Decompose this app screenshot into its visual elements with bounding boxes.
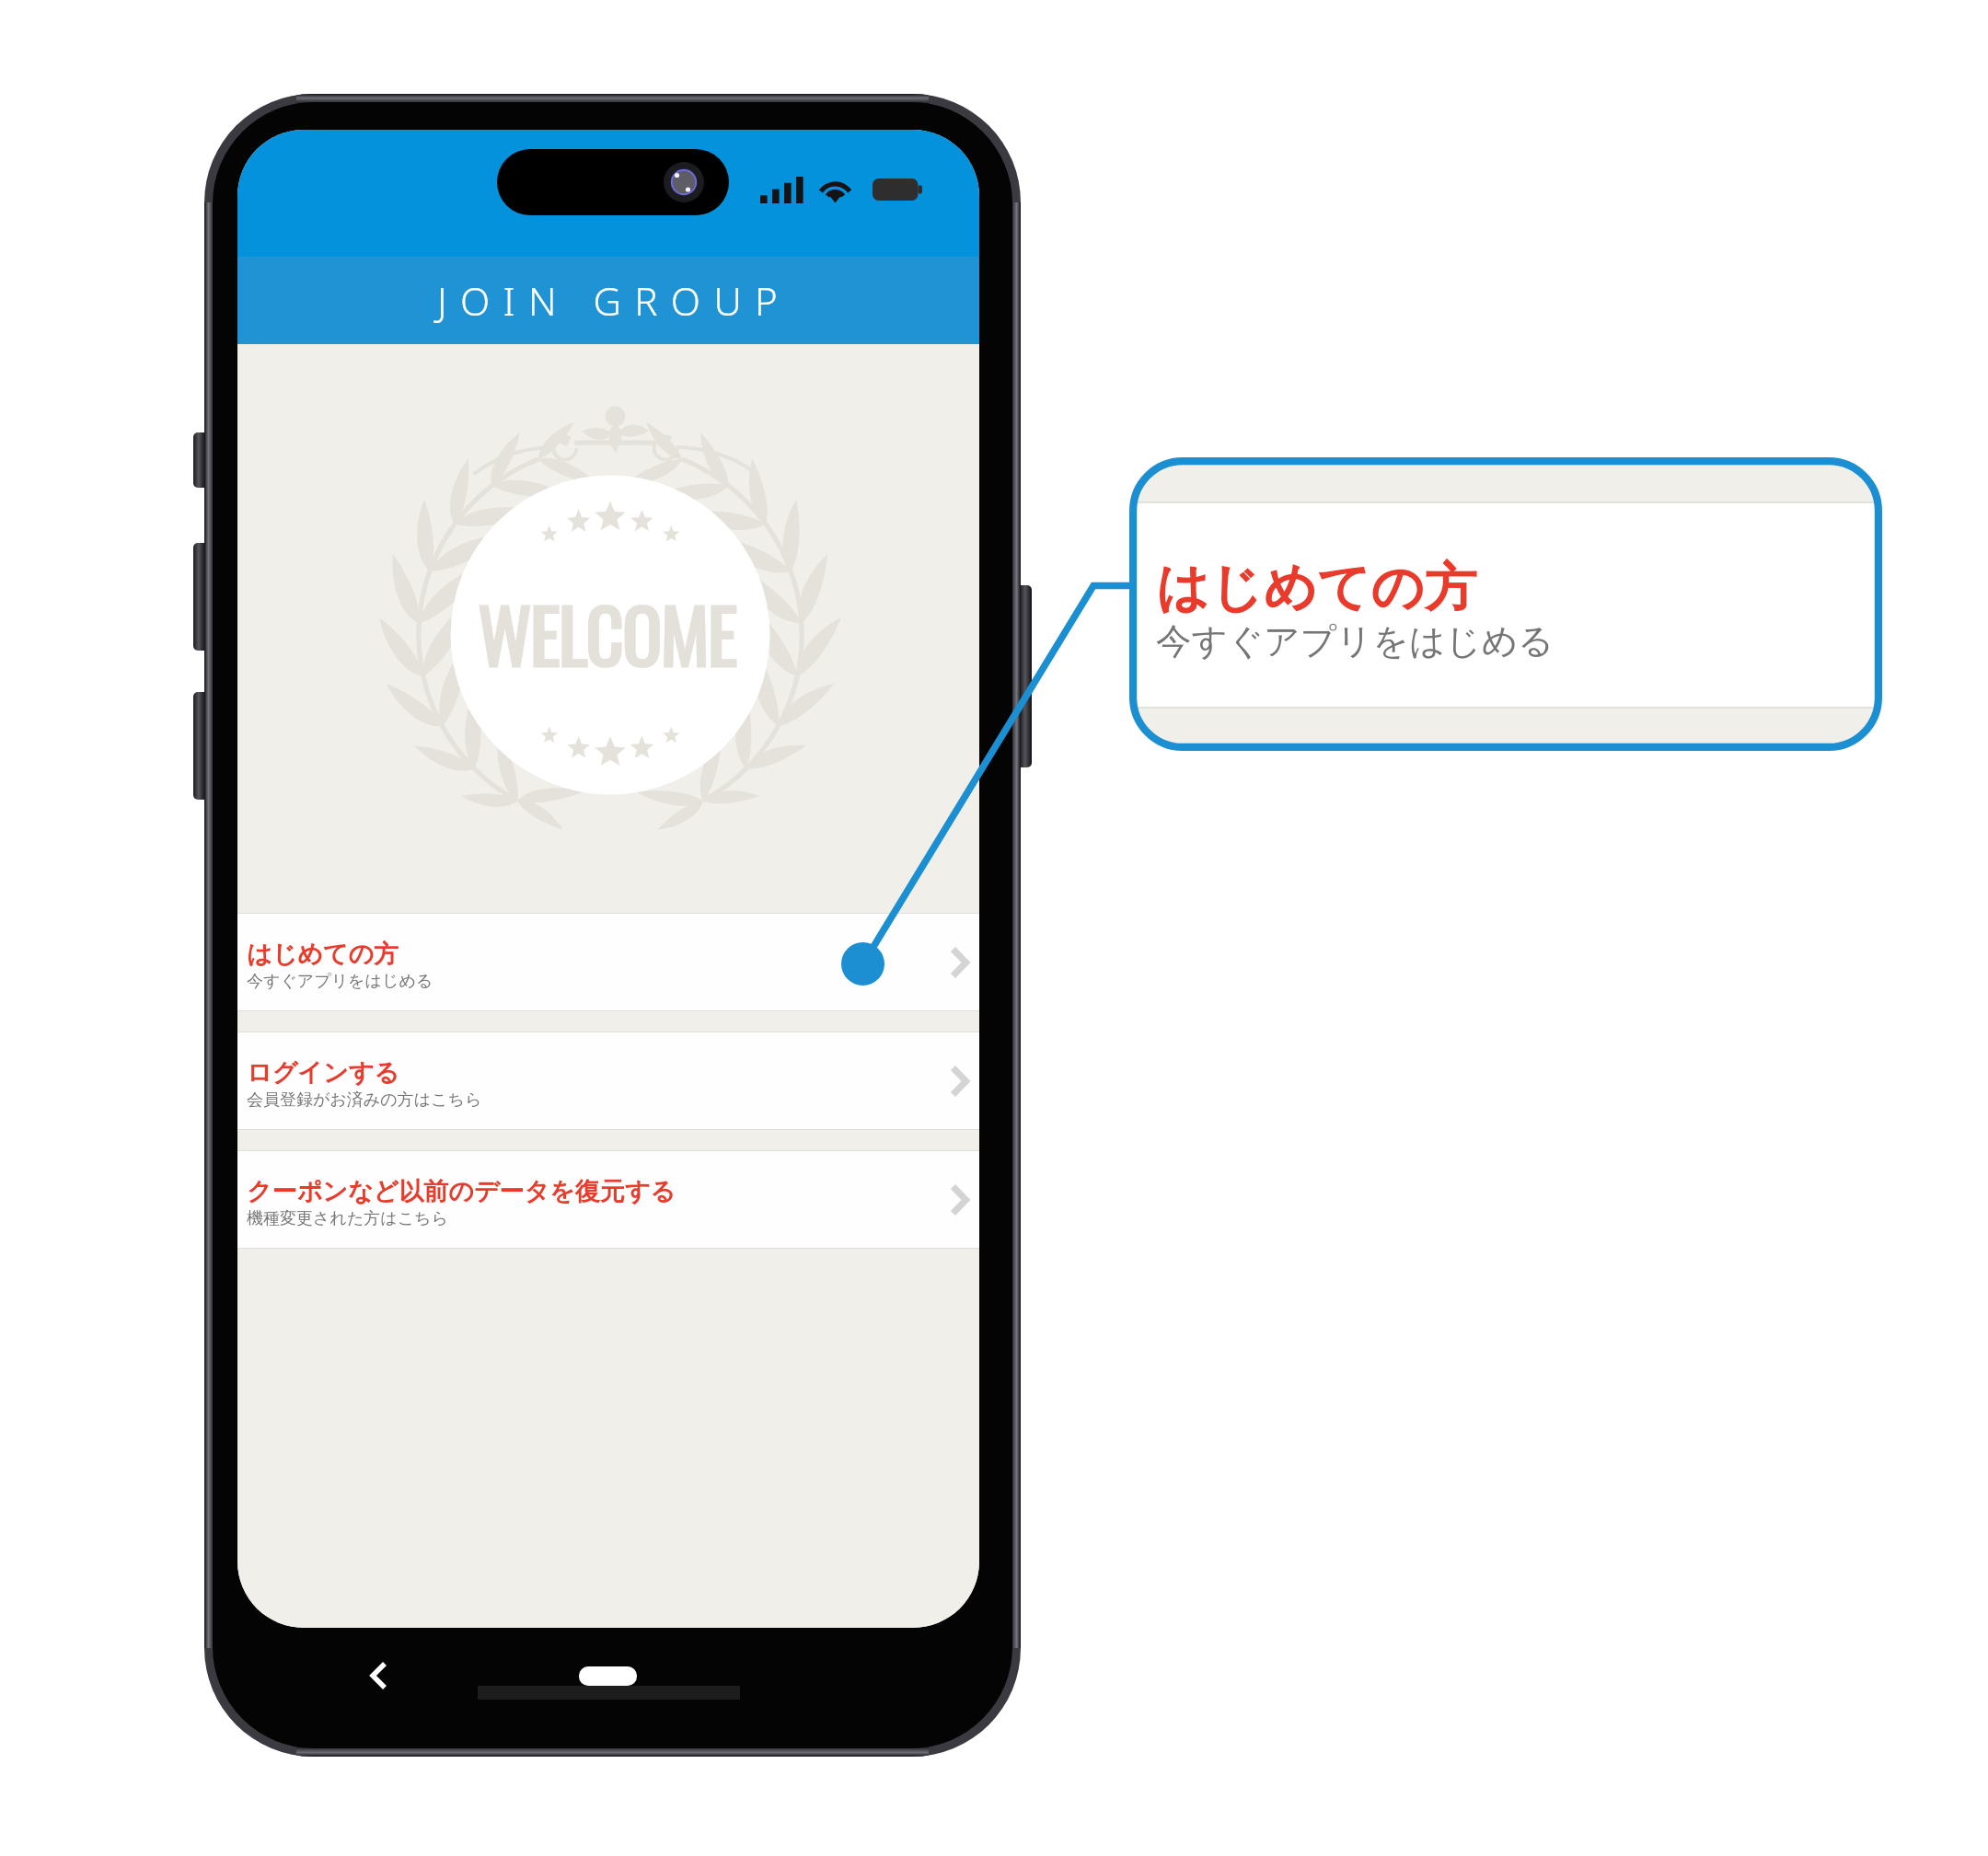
staticText: 会員登録がお済みの方はこちら [247,1089,482,1111]
button[interactable]: Home [579,1666,637,1686]
staticText: JOIN GROUP [437,274,792,327]
button[interactable]: はじめての方 [237,914,979,1010]
button[interactable]: Back [351,1648,406,1703]
staticText: 今すぐアプリをはじめる [1156,619,1555,664]
staticText: はじめての方 [247,939,399,970]
staticText: はじめての方 [1156,555,1477,621]
staticText: ログインする [247,1057,399,1089]
staticText: 今すぐアプリをはじめる [247,971,433,992]
staticText: 機種変更された方はこちら [247,1208,448,1229]
staticText: クーポンなど以前のデータを復元する [247,1176,676,1207]
button[interactable]: ログインする [237,1032,979,1129]
button[interactable]: クーポンなど以前のデータを復元する [237,1151,979,1248]
staticText: WELCOME [478,579,736,688]
